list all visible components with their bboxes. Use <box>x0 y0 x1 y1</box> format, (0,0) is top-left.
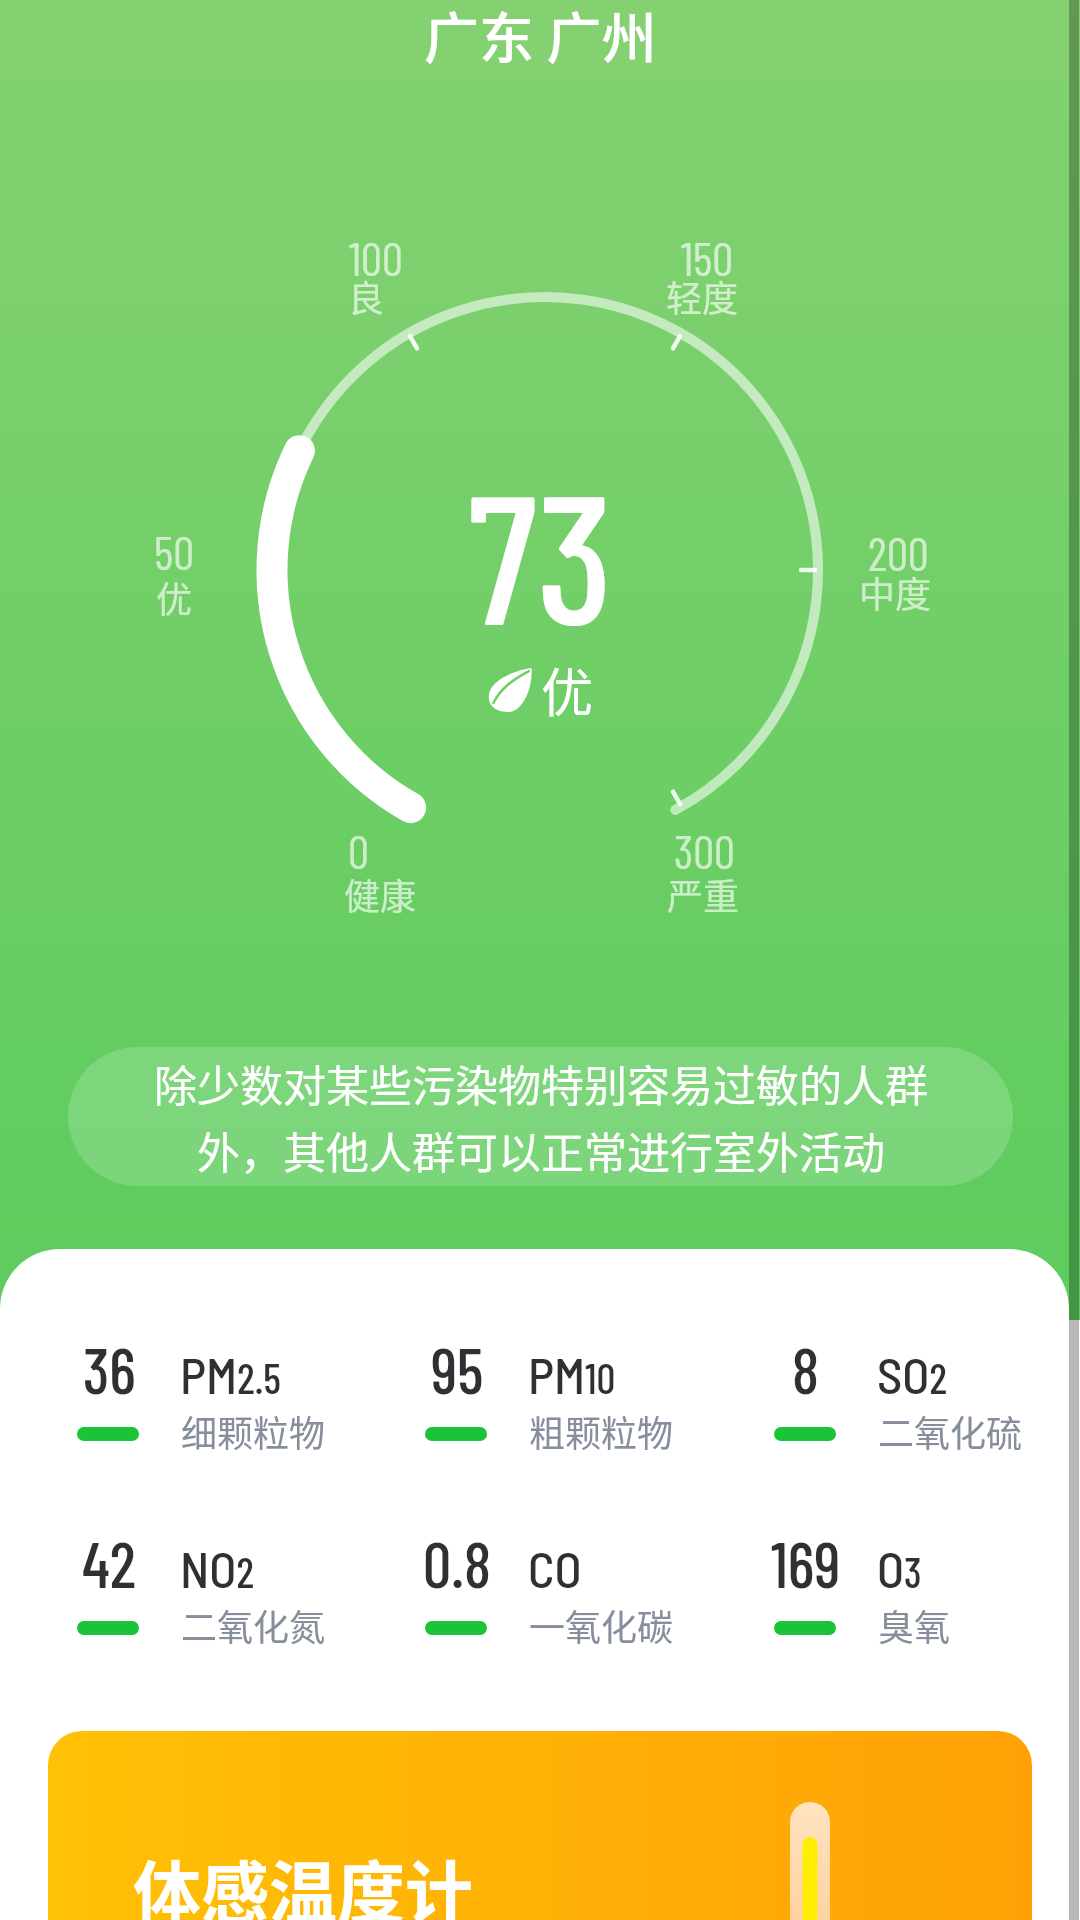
staticText: 95 <box>431 1331 484 1407</box>
staticText: 二氧化硫 <box>878 1405 1023 1457</box>
staticText: 一氧化碳 <box>529 1599 674 1651</box>
staticText: 0.8 <box>423 1525 491 1601</box>
staticText: 除少数对某些污染物特别容易过敏的人群外，其他人群可以正常进行室外活动 <box>141 1052 941 1182</box>
staticText: 广东 广州 <box>424 0 657 74</box>
staticText: 中度 <box>859 566 932 618</box>
staticText: CO <box>528 1538 582 1598</box>
staticText: 优 <box>541 652 594 727</box>
staticText: 100 <box>349 229 403 285</box>
staticText: 73 <box>468 444 613 661</box>
staticText: 良 <box>348 270 385 322</box>
staticText: 轻度 <box>666 270 739 322</box>
button[interactable]: 体感温度计 <box>48 1731 1032 1920</box>
staticText: 二氧化氮 <box>181 1599 326 1651</box>
button[interactable]: 0.8 <box>425 1525 765 1685</box>
staticText: 体感温度计 <box>133 1839 474 1920</box>
staticText: 优 <box>156 571 193 623</box>
staticText: PM2.5 <box>180 1344 281 1404</box>
button[interactable]: 95 <box>425 1331 765 1491</box>
button[interactable]: 36 <box>77 1331 417 1491</box>
button[interactable]: 8 <box>774 1331 1080 1491</box>
staticText: 健康 <box>344 868 417 920</box>
button[interactable]: 42 <box>77 1525 417 1685</box>
staticText: 150 <box>681 229 734 285</box>
staticText: 细颗粒物 <box>181 1405 326 1457</box>
staticText: 42 <box>82 1525 136 1601</box>
staticText: 50 <box>154 523 195 579</box>
staticText: 36 <box>83 1331 136 1407</box>
button[interactable]: 169 <box>774 1525 1080 1685</box>
staticText: 粗颗粒物 <box>529 1405 674 1457</box>
staticText: 169 <box>771 1525 841 1601</box>
staticText: 0 <box>348 822 369 878</box>
staticText: O3 <box>877 1538 922 1598</box>
staticText: PM10 <box>528 1344 616 1404</box>
button[interactable]: 除少数对某些污染物特别容易过敏的人群外，其他人群可以正常进行室外活动 <box>68 1047 1013 1186</box>
staticText: 8 <box>792 1331 820 1407</box>
staticText: NO2 <box>180 1538 254 1598</box>
staticText: 300 <box>674 822 735 878</box>
staticText: 200 <box>868 524 929 580</box>
staticText: 严重 <box>667 868 740 920</box>
staticText: 臭氧 <box>878 1599 951 1651</box>
staticText: SO2 <box>877 1344 947 1404</box>
